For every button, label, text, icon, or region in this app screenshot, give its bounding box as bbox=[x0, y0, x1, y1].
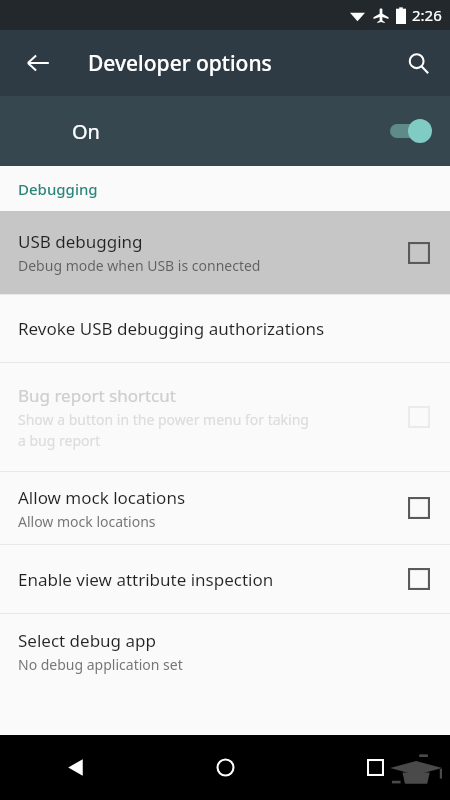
staticText: Developer options bbox=[88, 49, 272, 78]
button[interactable]: Allow mock locations bbox=[0, 472, 450, 544]
button[interactable]: USB debugging bbox=[0, 211, 450, 294]
staticText: Show a button in the power menu for taki… bbox=[18, 410, 309, 429]
button[interactable]: Enable view attribute inspection bbox=[0, 545, 450, 613]
button[interactable]: Home bbox=[150, 735, 300, 800]
button[interactable]: Back bbox=[0, 735, 150, 800]
button[interactable]: Search bbox=[394, 39, 442, 87]
button[interactable]: Select debug app bbox=[0, 614, 450, 688]
staticText: On bbox=[72, 118, 100, 145]
staticText: No debug application set bbox=[18, 655, 183, 674]
staticText: Enable view attribute inspection bbox=[18, 568, 408, 591]
staticText: Debug mode when USB is connected bbox=[18, 256, 261, 275]
staticText: Revoke USB debugging authorizations bbox=[18, 317, 325, 340]
staticText: Select debug app bbox=[18, 629, 156, 652]
staticText: Allow mock locations bbox=[18, 512, 156, 531]
staticText: Allow mock locations bbox=[18, 486, 186, 509]
button[interactable]: On bbox=[0, 96, 450, 166]
staticText: Debugging bbox=[18, 179, 98, 199]
button[interactable]: Recent apps bbox=[300, 735, 450, 800]
button[interactable]: Bug report shortcut bbox=[0, 363, 450, 471]
button[interactable]: Revoke USB debugging authorizations bbox=[0, 295, 450, 362]
staticText: 2:26 bbox=[412, 5, 442, 25]
staticText: Bug report shortcut bbox=[18, 384, 176, 407]
staticText: a bug report bbox=[18, 431, 101, 450]
button[interactable]: Back bbox=[14, 39, 62, 87]
staticText: USB debugging bbox=[18, 230, 143, 253]
